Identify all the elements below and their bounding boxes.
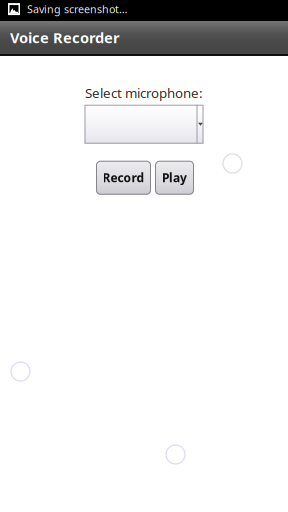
button[interactable]: Play: [155, 161, 194, 195]
staticText: Voice Recorder: [10, 28, 120, 47]
staticText: Saving screenshot…: [27, 2, 127, 16]
button[interactable]: Record: [96, 161, 151, 195]
button[interactable]: Select microphone: [84, 105, 203, 144]
staticText: Play: [162, 170, 187, 186]
staticText: Record: [102, 170, 144, 186]
staticText: Select microphone:: [85, 84, 203, 102]
